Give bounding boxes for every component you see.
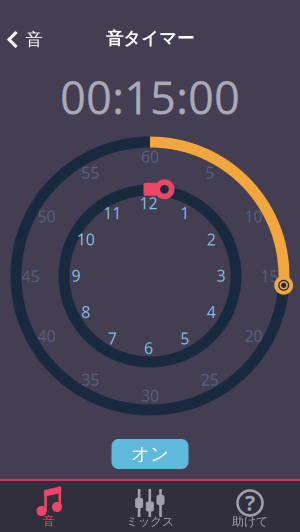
- staticText: 12: [139, 192, 157, 214]
- staticText: 11: [103, 202, 121, 223]
- staticText: 2: [207, 229, 216, 250]
- staticText: 40: [37, 325, 55, 346]
- staticText: 60: [141, 146, 159, 167]
- staticText: ミックス: [126, 514, 174, 529]
- staticText: 45: [21, 265, 39, 287]
- staticText: オン: [131, 442, 169, 465]
- staticText: 35: [81, 369, 99, 390]
- button[interactable]: ミックス: [100, 480, 200, 532]
- staticText: ?: [245, 488, 255, 517]
- staticText: 5: [205, 162, 214, 183]
- button[interactable]: オン: [111, 439, 188, 469]
- staticText: 7: [108, 328, 117, 349]
- button[interactable]: 助けて: [200, 480, 300, 532]
- staticText: 6: [144, 337, 153, 359]
- staticText: 音タイマー: [106, 28, 194, 49]
- staticText: 50: [37, 206, 55, 227]
- staticText: 20: [244, 325, 262, 346]
- staticText: 1: [180, 202, 189, 223]
- staticText: 00:15:00: [60, 67, 240, 127]
- staticText: 10: [244, 206, 262, 227]
- staticText: 30: [141, 385, 159, 406]
- button[interactable]: Back: [7, 29, 42, 50]
- staticText: 助けて: [232, 514, 268, 529]
- staticText: 55: [81, 162, 99, 183]
- staticText: 10: [77, 229, 95, 250]
- staticText: 9: [71, 265, 80, 286]
- staticText: 5: [180, 328, 189, 349]
- staticText: 15: [260, 265, 278, 287]
- staticText: 3: [216, 265, 225, 286]
- staticText: 25: [201, 369, 219, 390]
- staticText: 4: [207, 301, 216, 322]
- staticText: 8: [81, 301, 90, 322]
- button[interactable]: 音: [0, 480, 100, 532]
- staticText: 音: [25, 29, 42, 50]
- staticText: 音: [43, 514, 55, 528]
